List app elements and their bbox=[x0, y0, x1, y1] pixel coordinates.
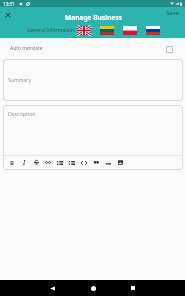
button[interactable]: Code bbox=[78, 156, 90, 169]
staticText: Description bbox=[8, 111, 36, 118]
button[interactable]: Close bbox=[1, 8, 15, 22]
button[interactable]: Recents bbox=[125, 280, 141, 296]
button[interactable]: English bbox=[77, 26, 91, 35]
staticText: Summary bbox=[8, 77, 32, 84]
button[interactable]: Bold bbox=[6, 156, 18, 169]
staticText: Manage Business bbox=[65, 13, 123, 22]
staticText: 13:51 bbox=[3, 1, 15, 7]
button[interactable]: General Information bbox=[0, 23, 101, 38]
staticText: I bbox=[23, 158, 26, 167]
staticText: Save bbox=[166, 9, 180, 17]
button[interactable]: Numbered list bbox=[54, 156, 66, 169]
button[interactable]: Polish bbox=[123, 26, 137, 35]
button[interactable]: Description bbox=[3, 105, 183, 155]
button[interactable]: Home bbox=[85, 280, 101, 296]
button[interactable]: Insert image bbox=[114, 156, 126, 169]
button[interactable]: Lithuanian bbox=[100, 26, 114, 35]
button[interactable]: Bullet list bbox=[66, 156, 78, 169]
staticText: B bbox=[10, 159, 14, 167]
button[interactable]: Back bbox=[44, 280, 60, 296]
button[interactable]: Russian bbox=[146, 26, 160, 35]
button[interactable]: Italic bbox=[18, 156, 30, 169]
button[interactable]: Horizontal rule bbox=[102, 156, 114, 169]
button[interactable]: Save bbox=[166, 6, 180, 20]
button[interactable]: Auto translate bbox=[10, 38, 177, 59]
button[interactable]: Link bbox=[42, 156, 54, 169]
button[interactable]: Strikethrough bbox=[30, 156, 42, 169]
button[interactable]: Summary bbox=[3, 59, 183, 101]
staticText: General Information bbox=[27, 27, 74, 34]
button[interactable]: Quote bbox=[90, 156, 102, 169]
staticText: Auto translate bbox=[10, 45, 43, 52]
